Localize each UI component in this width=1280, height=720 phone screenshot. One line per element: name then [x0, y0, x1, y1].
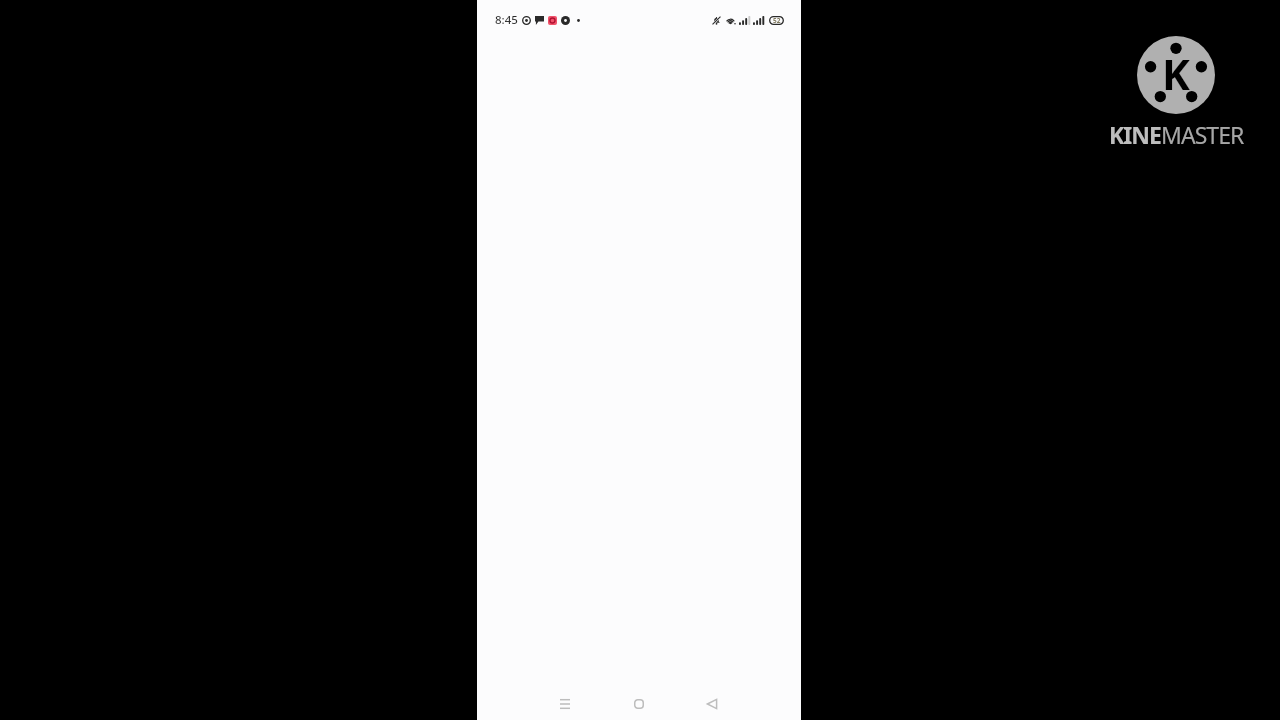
- button[interactable]: Recent apps: [545, 684, 585, 720]
- staticText: 8:45: [495, 12, 518, 28]
- staticText: MASTER: [1161, 119, 1244, 150]
- button[interactable]: Home: [619, 684, 659, 720]
- staticText: 52: [773, 16, 781, 25]
- staticText: KINE: [1109, 119, 1161, 150]
- button[interactable]: Back: [692, 684, 732, 720]
- staticText: K: [1162, 45, 1190, 102]
